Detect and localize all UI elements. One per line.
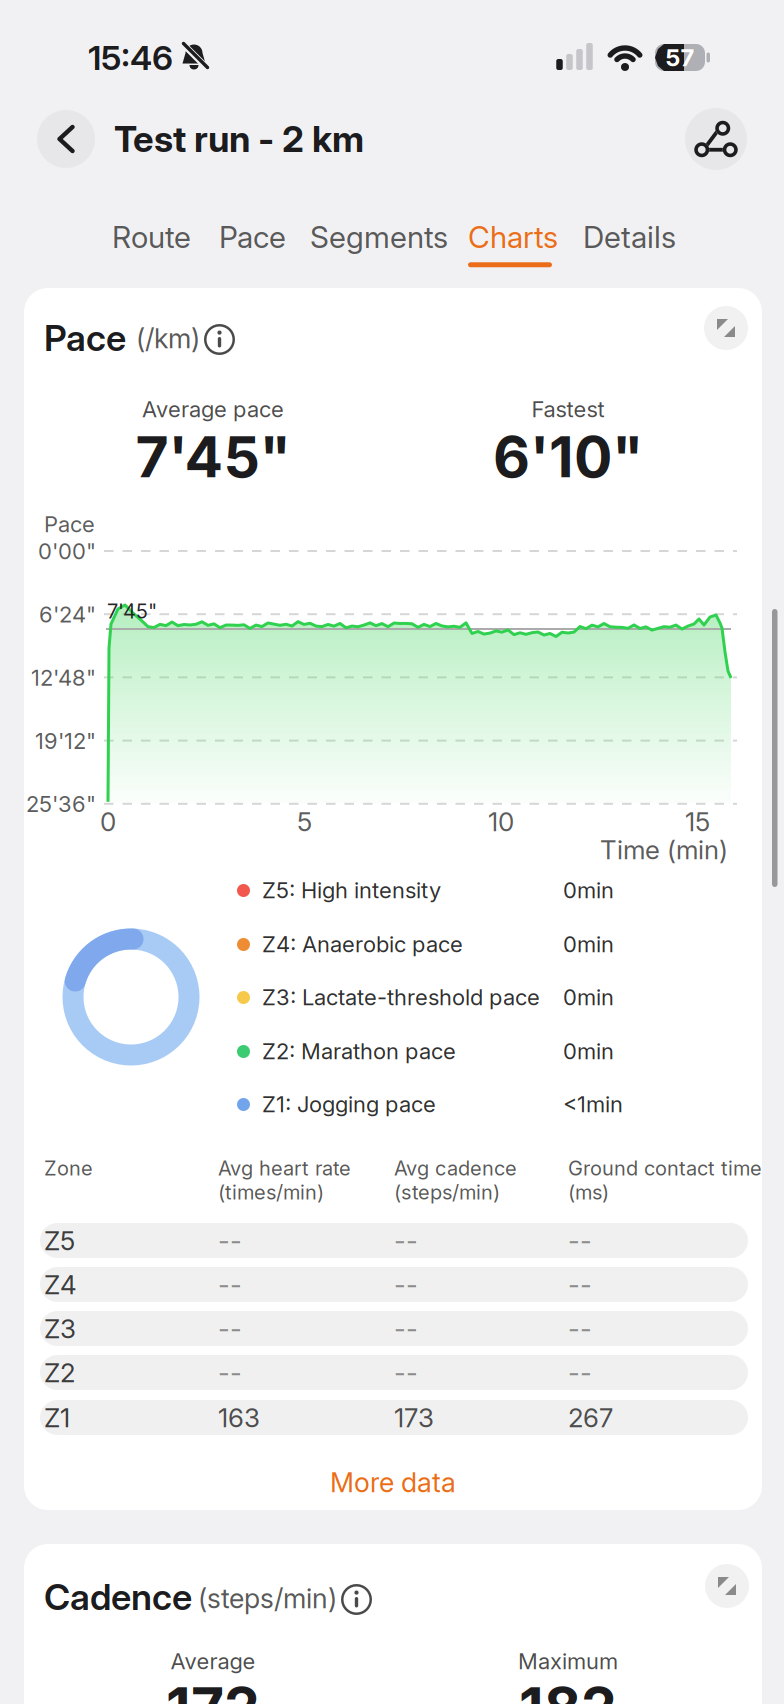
staticText: Z3 xyxy=(44,1313,76,1344)
staticText: Z2: Marathon pace xyxy=(262,1038,456,1065)
staticText: 0'00" xyxy=(38,538,96,565)
staticText: Maximum xyxy=(518,1648,618,1675)
button[interactable]: Pace xyxy=(219,219,286,255)
staticText: 7'45" xyxy=(107,599,157,623)
staticText: 5 xyxy=(297,806,312,837)
staticText: Route xyxy=(112,219,191,255)
staticText: 173 xyxy=(394,1402,434,1433)
staticText: Charts xyxy=(468,219,558,255)
staticText: Z2 xyxy=(44,1357,75,1388)
staticText: 6'24" xyxy=(39,601,96,628)
button[interactable]: Route xyxy=(112,219,191,255)
staticText: <1min xyxy=(563,1091,623,1118)
staticText: (/km) xyxy=(136,322,200,355)
staticText: Z4 xyxy=(44,1269,77,1300)
staticText: Cadence xyxy=(44,1575,192,1619)
staticText: 15:46 xyxy=(88,37,173,78)
staticText: Z1 xyxy=(44,1402,70,1433)
staticText: Test run - 2 km xyxy=(114,117,364,161)
staticText: Avg cadence (steps/min) xyxy=(394,1156,517,1204)
staticText: Z3: Lactate-threshold pace xyxy=(262,984,540,1011)
staticText: -- xyxy=(568,1269,592,1300)
staticText: -- xyxy=(218,1225,242,1256)
staticText: 0min xyxy=(563,984,614,1011)
staticText: (steps/min) xyxy=(198,1582,337,1615)
button[interactable]: Charts xyxy=(468,219,558,267)
staticText: More data xyxy=(330,1466,456,1499)
button[interactable]: About pace xyxy=(204,324,235,355)
button[interactable]: Details xyxy=(583,219,676,255)
staticText: Z5 xyxy=(44,1225,75,1256)
staticText: 0min xyxy=(563,877,614,904)
staticText: Time (min) xyxy=(600,834,728,865)
staticText: 163 xyxy=(218,1402,260,1433)
button[interactable]: Route options xyxy=(685,108,747,170)
staticText: Average xyxy=(170,1648,255,1675)
staticText: 57 xyxy=(665,43,694,72)
staticText: -- xyxy=(394,1269,418,1300)
staticText: Details xyxy=(583,219,676,255)
button[interactable]: More data xyxy=(24,1466,762,1499)
staticText: Pace xyxy=(219,219,286,255)
staticText: Segments xyxy=(310,219,448,255)
staticText: -- xyxy=(218,1313,242,1344)
staticText: -- xyxy=(568,1357,592,1388)
staticText: Average pace xyxy=(142,396,284,423)
staticText: -- xyxy=(568,1225,592,1256)
staticText: 6'10" xyxy=(493,422,643,491)
staticText: Z4: Anaerobic pace xyxy=(262,931,463,958)
staticText: -- xyxy=(394,1357,418,1388)
staticText: -- xyxy=(218,1357,242,1388)
staticText: -- xyxy=(568,1313,592,1344)
staticText: 0min xyxy=(563,1038,614,1065)
staticText: 0 xyxy=(100,806,116,837)
staticText: Ground contact time (ms) xyxy=(568,1156,762,1204)
staticText: 15 xyxy=(685,806,710,837)
staticText: 10 xyxy=(488,806,514,837)
staticText: Z1: Jogging pace xyxy=(262,1091,436,1118)
staticText: 172 xyxy=(166,1673,260,1704)
staticText: -- xyxy=(218,1269,242,1300)
staticText: Zone xyxy=(44,1156,93,1180)
staticText: Z5: High intensity xyxy=(262,877,441,904)
staticText: -- xyxy=(394,1225,418,1256)
staticText: Pace xyxy=(44,316,126,360)
staticText: -- xyxy=(394,1313,418,1344)
staticText: 25'36" xyxy=(26,791,96,817)
button[interactable]: Back xyxy=(37,110,95,168)
staticText: Avg heart rate (times/min) xyxy=(218,1156,351,1204)
staticText: 7'45" xyxy=(135,422,290,491)
staticText: Pace xyxy=(44,511,95,538)
button[interactable]: Expand pace chart xyxy=(704,306,748,350)
button[interactable]: About cadence xyxy=(341,1584,372,1615)
staticText: 12'48" xyxy=(31,664,96,691)
button[interactable]: Expand cadence chart xyxy=(705,1564,749,1608)
staticText: Fastest xyxy=(531,396,604,423)
button[interactable]: Segments xyxy=(310,219,448,255)
staticText: 19'12" xyxy=(35,728,96,754)
staticText: 0min xyxy=(563,931,614,958)
staticText: 267 xyxy=(568,1402,613,1433)
staticText: 182 xyxy=(519,1673,617,1704)
